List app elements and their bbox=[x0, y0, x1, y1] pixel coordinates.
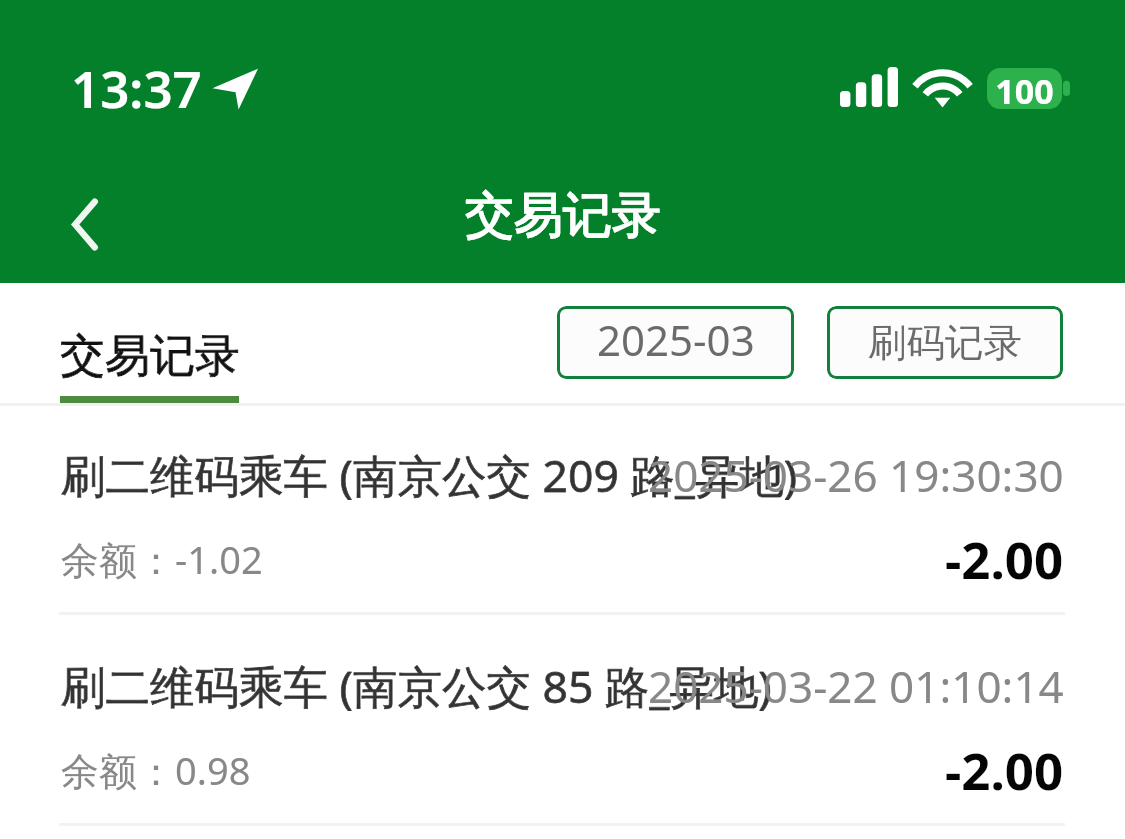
staticText: 刷二维码乘车 (南京公交 209 路_异地) bbox=[61, 444, 798, 505]
button[interactable]: 2025-03 bbox=[557, 306, 794, 379]
button[interactable]: Back bbox=[47, 186, 123, 262]
staticText: 交易记录 bbox=[465, 185, 661, 247]
staticText: 交易记录 bbox=[465, 185, 661, 247]
staticText: 13:37 bbox=[71, 53, 202, 122]
staticText: 2025-03 bbox=[597, 311, 755, 368]
button[interactable]: 交易记录 bbox=[60, 283, 280, 403]
staticText: 2025-03-26 19:30:30 bbox=[648, 445, 1064, 505]
staticText: 100 bbox=[987, 68, 1062, 109]
staticText: 刷码记录 bbox=[868, 319, 1022, 368]
staticText: -2.00 bbox=[945, 524, 1064, 593]
button[interactable]: 刷二维码乘车 (南京公交 209 路_异地) bbox=[0, 406, 1125, 617]
staticText: -2.00 bbox=[945, 735, 1064, 804]
button[interactable]: 刷二维码乘车 (南京公交 85 路_异地) bbox=[0, 617, 1125, 828]
staticText: 2025-03-22 01:10:14 bbox=[648, 656, 1064, 716]
staticText: 刷二维码乘车 (南京公交 85 路_异地) bbox=[61, 655, 772, 716]
staticText: 刷二维码乘车 (南京公交 85 路_异地) bbox=[61, 655, 772, 716]
staticText: 刷二维码乘车 (南京公交 209 路_异地) bbox=[61, 444, 798, 505]
staticText: 交易记录 bbox=[60, 328, 240, 385]
staticText: 余额：0.98 bbox=[61, 744, 251, 796]
staticText: 交易记录 bbox=[60, 328, 240, 385]
button[interactable]: 刷码记录 bbox=[827, 306, 1063, 379]
staticText: 余额：-1.02 bbox=[61, 533, 263, 585]
